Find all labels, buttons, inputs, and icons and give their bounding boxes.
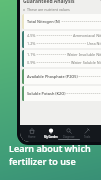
- staticText: 4.5%: [27, 33, 36, 38]
- button[interactable]: Tools: [79, 127, 95, 140]
- staticText: Urea Nitrogen: [87, 41, 101, 46]
- button[interactable]: Diagnose: [61, 127, 77, 140]
- staticText: 1.2%: [27, 41, 36, 46]
- staticText: Tools: [84, 135, 91, 139]
- staticText: Total Nitrogen (N): [27, 19, 61, 24]
- button[interactable]: Available Phosphate (P2O5): [22, 69, 101, 84]
- staticText: 0.9%: [27, 60, 36, 65]
- staticText: fertilizer to use: [9, 155, 76, 167]
- staticText: Water Soluble Nitrogen: [71, 60, 101, 65]
- button[interactable]: 1.1%: [22, 50, 101, 67]
- staticText: Ammoniacal Nitrogen: [73, 33, 101, 38]
- staticText: My Garden: [44, 135, 58, 139]
- staticText: 15-5-4: [100, 0, 101, 5]
- staticText: Guaranteed Analysis: [23, 0, 75, 5]
- button[interactable]: 4.5%: [22, 31, 101, 48]
- staticText: These are nutrient values: [27, 7, 70, 12]
- staticText: Learn about which: [9, 142, 91, 154]
- staticText: Available Phosphate (P2O5): [27, 74, 78, 79]
- button[interactable]: My Garden: [43, 127, 59, 140]
- staticText: Diagnose: [63, 135, 75, 139]
- staticText: Soluble Potash (K2O): [27, 91, 66, 96]
- staticText: Home: [28, 135, 36, 139]
- button[interactable]: Home: [24, 127, 40, 140]
- button[interactable]: Soluble Potash (K2O): [22, 86, 101, 101]
- button[interactable]: Total Nitrogen (N): [22, 14, 101, 29]
- staticText: Water Insoluble Nitrogen: [67, 52, 101, 57]
- staticText: 1.1%: [27, 52, 36, 57]
